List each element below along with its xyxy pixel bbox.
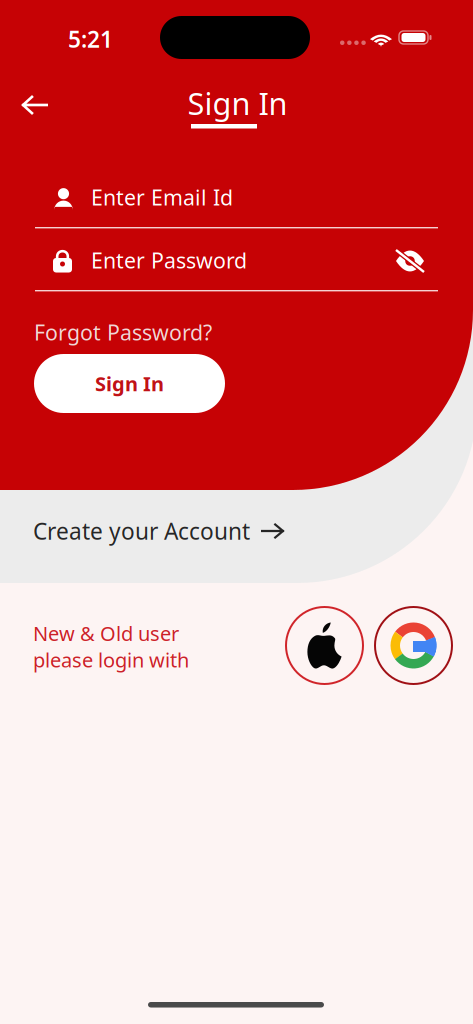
staticText: Create your Account — [33, 516, 250, 546]
staticText: New & Old user please login with — [33, 620, 189, 673]
staticText: Enter Password — [91, 246, 247, 274]
staticText: Sign In — [95, 370, 164, 397]
button[interactable]: Sign in with Google — [375, 607, 452, 684]
button[interactable]: Back — [9, 83, 61, 127]
staticText: 5:21 — [68, 24, 113, 54]
button[interactable]: Forgot Password? — [34, 318, 212, 346]
staticText: Sign In — [187, 83, 287, 123]
button[interactable]: Show password — [388, 239, 432, 283]
button[interactable]: Sign In — [34, 354, 225, 413]
staticText: Forgot Password? — [34, 318, 212, 346]
button[interactable]: Sign in with Apple — [286, 607, 363, 684]
button[interactable]: Create your Account — [33, 508, 333, 554]
staticText: Enter Email Id — [91, 183, 233, 211]
